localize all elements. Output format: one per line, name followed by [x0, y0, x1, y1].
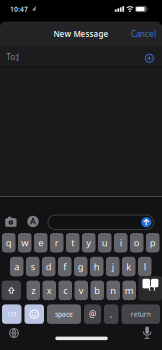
- button[interactable]: g: [74, 257, 87, 276]
- button[interactable]: y: [82, 233, 95, 252]
- staticText: g: [78, 260, 84, 273]
- button[interactable]: @: [84, 304, 101, 324]
- button[interactable]: x: [42, 281, 56, 300]
- button[interactable]: r: [50, 233, 63, 252]
- button[interactable]: l: [138, 257, 151, 276]
- staticText: m: [125, 284, 134, 297]
- staticText: y: [86, 237, 91, 249]
- staticText: h: [94, 260, 100, 273]
- staticText: @: [89, 309, 96, 319]
- staticText: f: [63, 260, 66, 273]
- button[interactable]: space: [47, 304, 81, 324]
- button[interactable]: q: [2, 233, 15, 252]
- staticText: l: [144, 260, 146, 273]
- staticText: e: [38, 237, 43, 249]
- button[interactable]: w: [18, 233, 31, 252]
- staticText: b: [94, 284, 100, 297]
- button[interactable]: p: [146, 233, 159, 252]
- button[interactable]: m: [122, 281, 136, 300]
- button[interactable]: Add Contact: [142, 51, 157, 66]
- staticText: k: [126, 260, 131, 273]
- button[interactable]: d: [42, 257, 55, 276]
- button[interactable]: h: [90, 257, 103, 276]
- button[interactable]: s: [26, 257, 39, 276]
- staticText: 10:47: [10, 5, 28, 13]
- staticText: a: [14, 260, 19, 273]
- staticText: v: [79, 284, 84, 297]
- staticText: j: [112, 260, 114, 273]
- staticText: n: [110, 284, 116, 297]
- button[interactable]: Delete: [138, 276, 162, 300]
- staticText: New Message: [53, 29, 108, 39]
- staticText: d: [46, 260, 52, 273]
- button[interactable]: To: [0, 46, 138, 67]
- staticText: return: [131, 310, 151, 319]
- button[interactable]: o: [130, 233, 143, 252]
- staticText: Cancel: [131, 29, 156, 39]
- button[interactable]: c: [58, 281, 72, 300]
- staticText: i: [120, 237, 122, 249]
- staticText: r: [55, 237, 59, 249]
- button[interactable]: u: [98, 233, 111, 252]
- button[interactable]: 123: [2, 304, 21, 324]
- staticText: u: [102, 237, 108, 249]
- button[interactable]: Cancel: [126, 28, 160, 40]
- button[interactable]: Dictation: [139, 324, 155, 340]
- button[interactable]: v: [74, 281, 88, 300]
- button[interactable]: i: [114, 233, 127, 252]
- button[interactable]: j: [106, 257, 119, 276]
- staticText: c: [63, 284, 67, 297]
- button[interactable]: Message field: [48, 215, 153, 229]
- staticText: o: [134, 237, 140, 249]
- button[interactable]: Emoji: [24, 304, 44, 324]
- staticText: w: [21, 237, 28, 249]
- button[interactable]: e: [34, 233, 47, 252]
- button[interactable]: Shift: [2, 281, 21, 300]
- button[interactable]: Next Keyboard: [6, 325, 22, 341]
- button[interactable]: b: [90, 281, 104, 300]
- staticText: x: [47, 284, 52, 297]
- staticText: .: [110, 308, 113, 320]
- button[interactable]: Camera: [2, 214, 19, 228]
- staticText: p: [150, 237, 156, 249]
- button[interactable]: n: [106, 281, 120, 300]
- staticText: space: [55, 310, 73, 319]
- button[interactable]: Apps: [25, 214, 40, 229]
- button[interactable]: f: [58, 257, 71, 276]
- button[interactable]: z: [26, 281, 40, 300]
- button[interactable]: a: [10, 257, 23, 276]
- button[interactable]: .: [104, 304, 118, 324]
- staticText: s: [31, 260, 35, 273]
- staticText: z: [31, 284, 35, 297]
- button[interactable]: return: [121, 304, 160, 324]
- staticText: 123: [7, 311, 16, 318]
- staticText: To:: [6, 52, 17, 62]
- button[interactable]: t: [66, 233, 79, 252]
- button[interactable]: Send: [139, 215, 154, 230]
- staticText: q: [6, 237, 12, 249]
- staticText: t: [71, 237, 74, 249]
- button[interactable]: k: [122, 257, 135, 276]
